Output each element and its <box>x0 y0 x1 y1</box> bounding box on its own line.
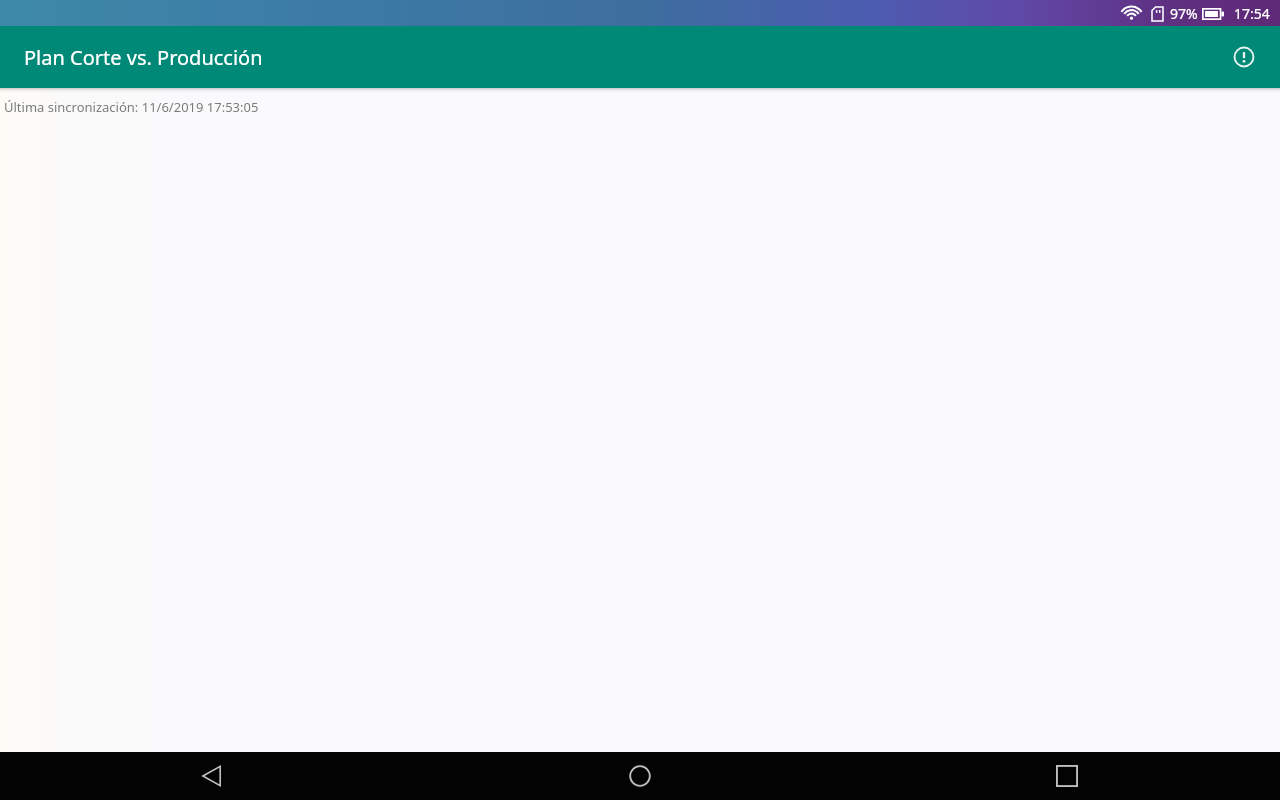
button[interactable]: Información <box>1220 33 1268 81</box>
staticText: 17:54 <box>1234 4 1270 23</box>
button[interactable]: Inicio <box>426 752 853 800</box>
staticText: Última sincronización: 11/6/2019 17:53:0… <box>4 98 259 116</box>
staticText: Plan Corte vs. Producción <box>24 44 263 71</box>
button[interactable]: Atrás <box>0 752 426 800</box>
button[interactable]: Recientes <box>853 752 1280 800</box>
staticText: 97% <box>1170 4 1198 23</box>
